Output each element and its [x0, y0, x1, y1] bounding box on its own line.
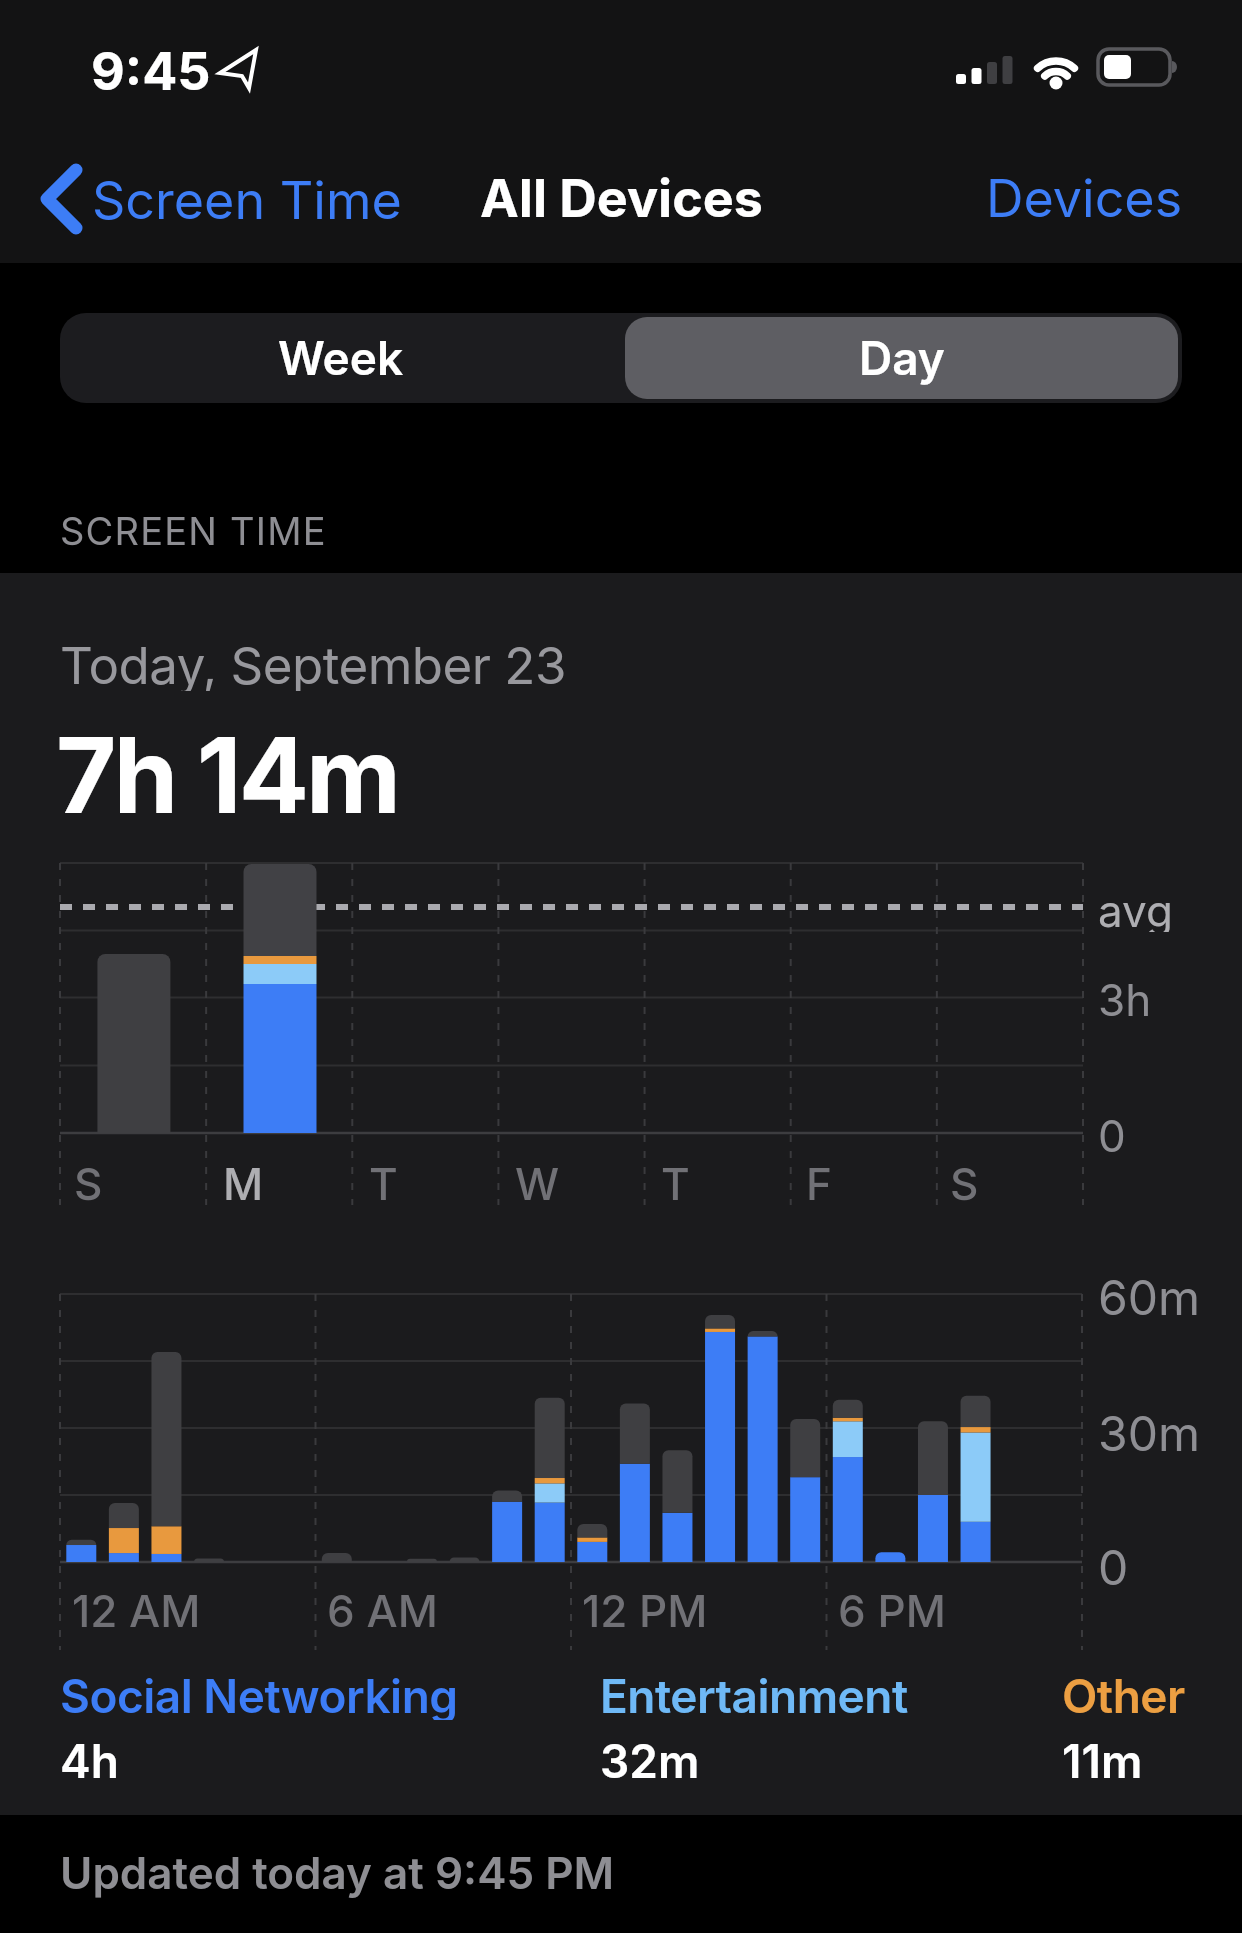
staticText: Updated today at 9:45 PM: [60, 1846, 615, 1898]
staticText: S: [950, 1157, 979, 1203]
staticText: Social Networking: [60, 1668, 458, 1720]
staticText: SCREEN TIME: [60, 508, 327, 554]
button[interactable]: Devices: [900, 160, 1183, 236]
button[interactable]: Week: [60, 313, 621, 403]
staticText: Other: [1062, 1668, 1185, 1720]
staticText: 12 PM: [582, 1584, 708, 1632]
staticText: 4h: [60, 1733, 119, 1785]
staticText: 60m: [1098, 1268, 1201, 1316]
staticText: 32m: [600, 1733, 700, 1785]
staticText: 6 AM: [327, 1584, 438, 1632]
staticText: Week: [278, 330, 404, 386]
staticText: S: [74, 1157, 103, 1203]
staticText: F: [806, 1157, 832, 1203]
button[interactable]: Other: [1062, 1668, 1222, 1720]
button[interactable]: Day: [621, 313, 1182, 403]
staticText: 0: [1098, 1538, 1129, 1586]
staticText: 7h 14m: [56, 712, 398, 816]
button[interactable]: Social Networking: [60, 1668, 580, 1720]
staticText: Entertainment: [600, 1668, 908, 1720]
staticText: All Devices: [480, 167, 763, 230]
staticText: T: [369, 1157, 398, 1203]
staticText: 0: [1098, 1109, 1126, 1157]
staticText: M: [223, 1157, 264, 1203]
staticText: 12 AM: [72, 1584, 201, 1632]
staticText: Today, September 23: [60, 635, 566, 691]
staticText: Screen Time: [92, 169, 402, 232]
staticText: Devices: [986, 167, 1183, 230]
button[interactable]: Screen Time: [30, 158, 426, 242]
staticText: 30m: [1098, 1404, 1200, 1452]
staticText: T: [661, 1157, 690, 1203]
staticText: 11m: [1062, 1733, 1143, 1785]
button[interactable]: Entertainment: [600, 1668, 1020, 1720]
staticText: W: [515, 1157, 560, 1203]
staticText: Day: [859, 330, 945, 386]
staticText: 3h: [1098, 973, 1152, 1021]
staticText: 9:45: [91, 40, 211, 96]
staticText: avg: [1098, 884, 1173, 932]
staticText: 6 PM: [838, 1584, 946, 1632]
